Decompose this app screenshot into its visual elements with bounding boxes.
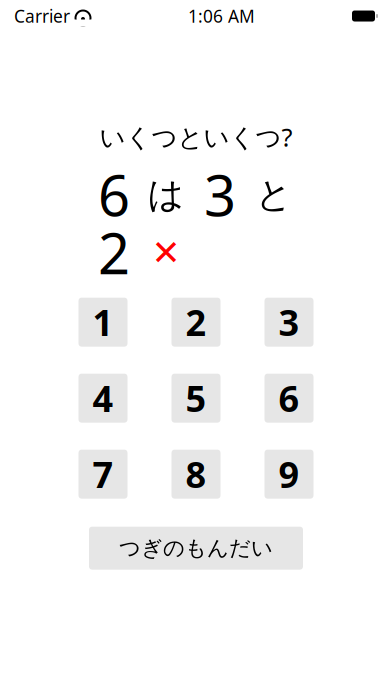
button[interactable]: つぎのもんだい	[89, 527, 303, 570]
button[interactable]: 5	[171, 374, 220, 423]
staticText: ✕	[151, 233, 180, 272]
staticText: 9	[278, 450, 299, 498]
staticText: 2	[185, 298, 206, 346]
staticText: 2	[98, 215, 130, 290]
button[interactable]: 1	[78, 298, 127, 347]
button[interactable]: 3	[264, 298, 313, 347]
staticText: 1:06 AM	[188, 4, 255, 27]
staticText: いくつといくつ?	[99, 120, 292, 154]
staticText: と	[255, 172, 292, 217]
staticText: 1	[92, 298, 113, 346]
staticText: 3	[278, 298, 299, 346]
staticText: 4	[92, 374, 113, 422]
button[interactable]: 7	[78, 450, 127, 499]
button[interactable]: 4	[78, 374, 127, 423]
staticText: 6	[278, 374, 299, 422]
staticText: 8	[185, 450, 206, 498]
staticText: は	[147, 172, 184, 217]
button[interactable]: 2	[171, 298, 220, 347]
staticText: Carrier	[14, 4, 70, 27]
button[interactable]: 6	[264, 374, 313, 423]
staticText: 3	[204, 157, 236, 232]
button[interactable]: 8	[171, 450, 220, 499]
staticText: つぎのもんだい	[119, 535, 273, 561]
staticText: 7	[92, 450, 113, 498]
button[interactable]: 9	[264, 450, 313, 499]
staticText: 5	[185, 374, 206, 422]
staticText: 6	[98, 157, 130, 232]
